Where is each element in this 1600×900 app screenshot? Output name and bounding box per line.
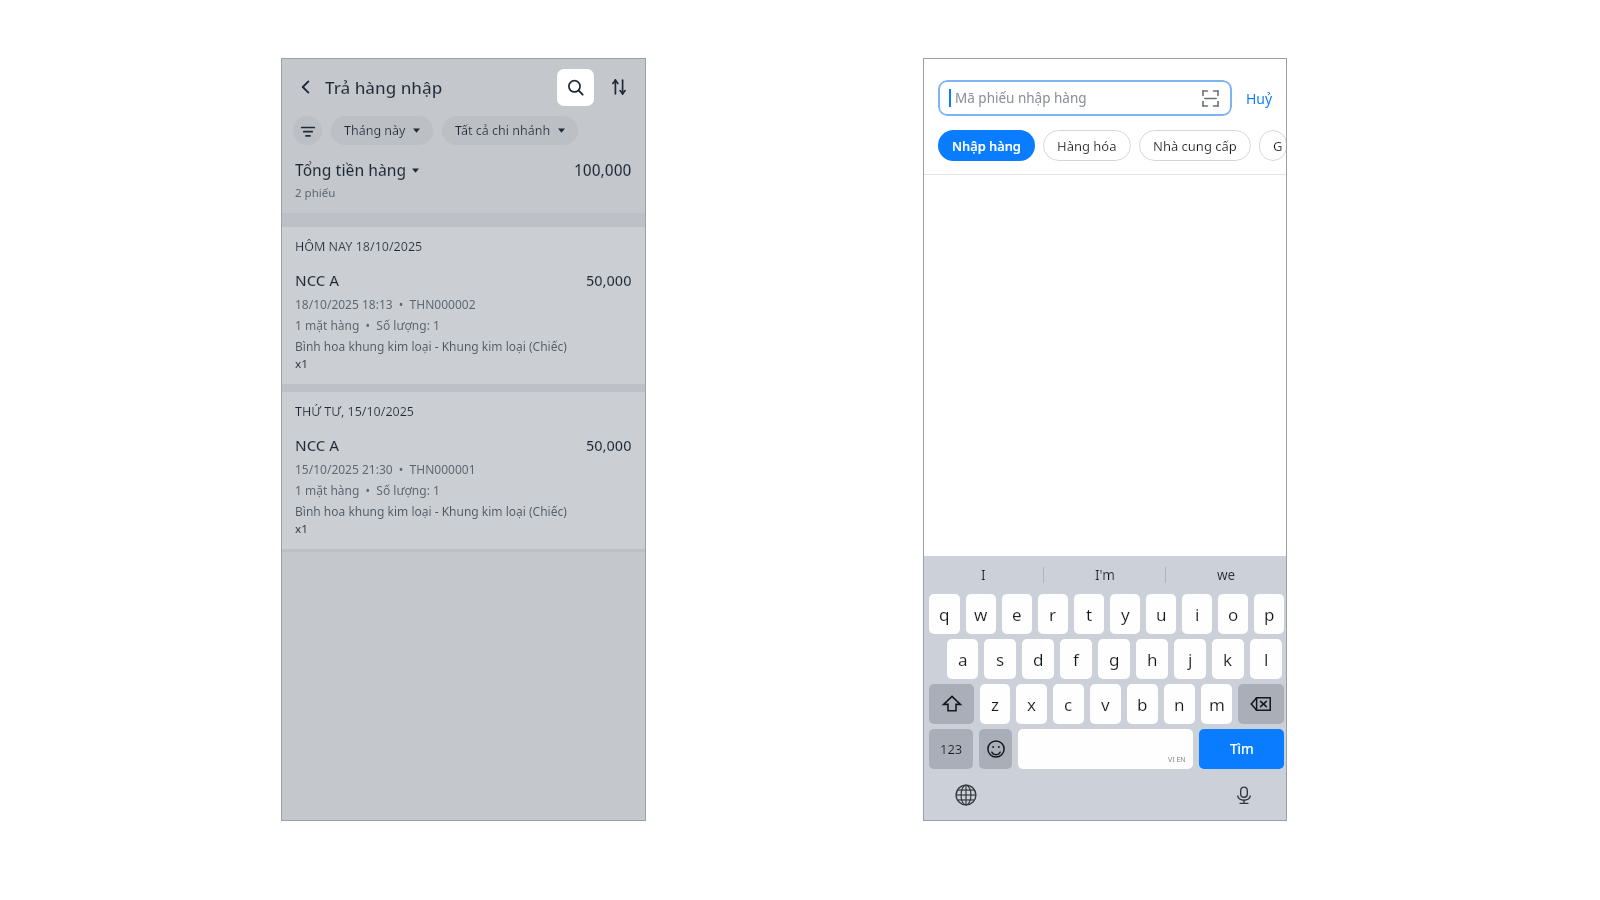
button[interactable]: x xyxy=(1016,684,1047,724)
button[interactable]: Scan barcode xyxy=(1199,87,1221,109)
staticText: b xyxy=(1137,693,1148,716)
button[interactable]: b xyxy=(1127,684,1158,724)
button[interactable]: p xyxy=(1254,594,1284,634)
button[interactable]: i xyxy=(1182,594,1212,634)
staticText: e xyxy=(1012,603,1022,626)
button[interactable]: Filter xyxy=(293,116,322,145)
staticText: NCC A xyxy=(295,435,340,455)
staticText: a xyxy=(958,648,968,671)
staticText: q xyxy=(939,603,950,626)
staticText: Tổng tiền hàng xyxy=(295,159,407,180)
button[interactable]: Huỷ xyxy=(1244,83,1275,114)
button[interactable]: Search xyxy=(557,69,594,106)
staticText: NCC A xyxy=(295,270,340,290)
button[interactable]: d xyxy=(1022,639,1054,679)
button[interactable]: e xyxy=(1002,594,1032,634)
button[interactable]: v xyxy=(1090,684,1121,724)
button[interactable]: f xyxy=(1060,639,1092,679)
staticText: 2 phiếu xyxy=(295,185,336,201)
staticText: n xyxy=(1174,693,1185,716)
button[interactable]: I'm xyxy=(1044,556,1165,594)
button[interactable]: r xyxy=(1038,594,1068,634)
button[interactable]: Sort xyxy=(604,72,634,102)
button[interactable]: Space xyxy=(1018,729,1193,769)
button[interactable]: j xyxy=(1174,639,1206,679)
button[interactable]: we xyxy=(1166,556,1287,594)
staticText: l xyxy=(1264,648,1269,671)
staticText: t xyxy=(1086,603,1093,626)
button[interactable]: Voice input xyxy=(1229,780,1259,810)
button[interactable]: n xyxy=(1164,684,1195,724)
button[interactable]: a xyxy=(947,639,978,679)
button[interactable]: z xyxy=(980,684,1010,724)
staticText: THỨ TƯ, 15/10/2025 xyxy=(295,403,415,420)
button[interactable]: Hàng hóa xyxy=(1043,130,1131,161)
button[interactable]: HÔM NAY 18/10/2025 xyxy=(281,227,646,384)
staticText: r xyxy=(1049,603,1057,626)
button[interactable]: I xyxy=(923,556,1043,594)
staticText: y xyxy=(1121,603,1130,626)
staticText: Bình hoa khung kim loại - Khung kim loại… xyxy=(295,338,567,354)
staticText: 1 mặt hàng • Số lượng: 1 xyxy=(295,317,440,333)
button[interactable]: Shift xyxy=(929,684,974,724)
staticText: 18/10/2025 18:13 • THN000002 xyxy=(295,296,476,312)
staticText: g xyxy=(1109,648,1120,671)
staticText: we xyxy=(1217,566,1236,584)
button[interactable]: Mã phiếu nhập hàng xyxy=(938,80,1232,116)
staticText: Nhập hàng xyxy=(952,137,1021,155)
button[interactable]: o xyxy=(1218,594,1248,634)
button[interactable]: Back xyxy=(291,72,321,102)
staticText: c xyxy=(1064,693,1073,716)
staticText: x1 xyxy=(295,521,308,537)
button[interactable]: 123 xyxy=(929,729,973,769)
button[interactable]: g xyxy=(1098,639,1130,679)
staticText: 1 mặt hàng • Số lượng: 1 xyxy=(295,482,440,498)
staticText: x1 xyxy=(295,356,308,372)
staticText: 50,000 xyxy=(586,435,632,455)
staticText: Bình hoa khung kim loại - Khung kim loại… xyxy=(295,503,567,519)
staticText: w xyxy=(974,603,988,626)
button[interactable]: Change keyboard xyxy=(951,780,981,810)
staticText: VI EN xyxy=(1168,755,1186,765)
button[interactable]: Tìm xyxy=(1199,729,1284,769)
staticText: I xyxy=(981,566,986,584)
button[interactable]: m xyxy=(1201,684,1232,724)
staticText: 100,000 xyxy=(574,159,632,180)
button[interactable]: t xyxy=(1074,594,1104,634)
staticText: m xyxy=(1209,693,1225,716)
staticText: u xyxy=(1156,603,1167,626)
staticText: Trả hàng nhập xyxy=(325,76,443,99)
staticText: f xyxy=(1073,648,1079,671)
staticText: Huỷ xyxy=(1246,89,1273,108)
button[interactable]: h xyxy=(1136,639,1168,679)
button[interactable]: Ghi chú xyxy=(1259,130,1287,161)
staticText: h xyxy=(1147,648,1158,671)
staticText: Tháng này xyxy=(344,122,406,139)
staticText: v xyxy=(1101,693,1110,716)
staticText: Mã phiếu nhập hàng xyxy=(955,89,1087,107)
staticText: s xyxy=(996,648,1005,671)
button[interactable]: Tháng này xyxy=(331,116,433,145)
button[interactable]: u xyxy=(1146,594,1176,634)
button[interactable]: THỨ TƯ, 15/10/2025 xyxy=(281,392,646,549)
button[interactable]: s xyxy=(984,639,1016,679)
staticText: 15/10/2025 21:30 • THN000001 xyxy=(295,461,476,477)
staticText: j xyxy=(1188,648,1193,671)
button[interactable]: c xyxy=(1053,684,1084,724)
button[interactable]: y xyxy=(1110,594,1140,634)
button[interactable]: Nhập hàng xyxy=(938,130,1035,161)
button[interactable]: l xyxy=(1250,639,1282,679)
staticText: Tất cả chi nhánh xyxy=(455,122,551,139)
button[interactable]: Tất cả chi nhánh xyxy=(442,116,578,145)
button[interactable]: q xyxy=(929,594,960,634)
staticText: i xyxy=(1195,603,1200,626)
staticText: Tìm xyxy=(1230,740,1254,758)
staticText: 123 xyxy=(940,740,963,758)
staticText: o xyxy=(1228,603,1239,626)
button[interactable]: Emoji xyxy=(979,729,1012,769)
button[interactable]: k xyxy=(1212,639,1244,679)
button[interactable]: w xyxy=(966,594,996,634)
staticText: p xyxy=(1264,603,1275,626)
button[interactable]: Backspace xyxy=(1238,684,1284,724)
button[interactable]: Nhà cung cấp xyxy=(1139,130,1251,161)
